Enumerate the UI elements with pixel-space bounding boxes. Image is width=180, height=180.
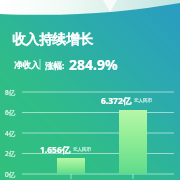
button[interactable]: Net revenue growth chart bbox=[0, 0, 180, 180]
